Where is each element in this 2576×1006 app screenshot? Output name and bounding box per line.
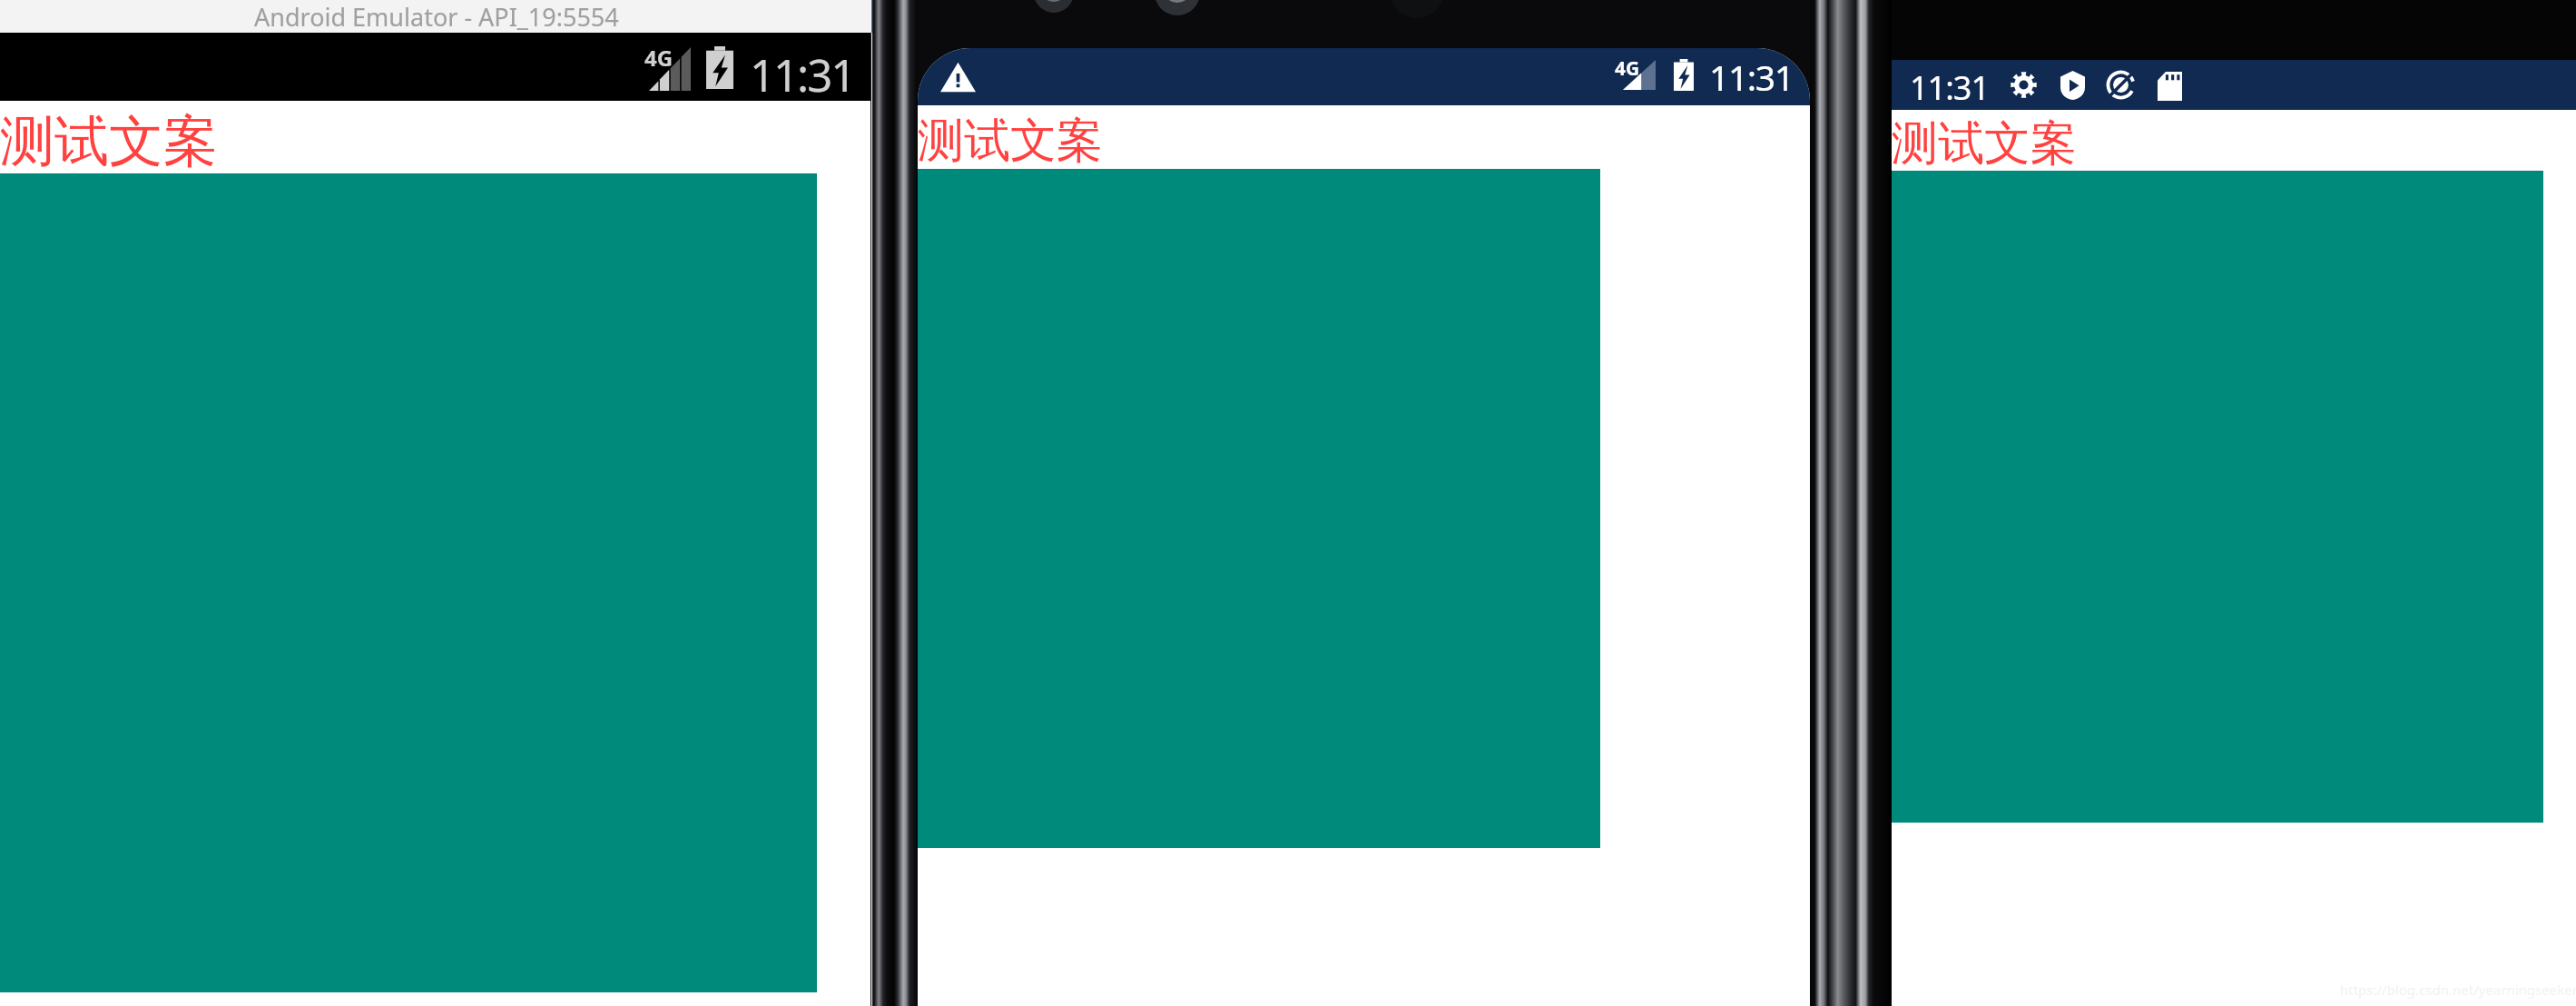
- button[interactable]: Emulator window title bar: [0, 0, 872, 33]
- staticText: 11:31: [1910, 65, 1990, 110]
- staticText: 测试文案: [918, 112, 1103, 170]
- staticText: 11:31: [750, 44, 855, 105]
- staticText: 测试文案: [1892, 114, 2077, 173]
- staticText: 4G: [644, 43, 673, 73]
- staticText: 11:31: [1709, 53, 1794, 101]
- staticText: Android Emulator - API_19:5554: [254, 0, 619, 33]
- staticText: https://blog.csdn.net/yearningseeker: [2340, 981, 2576, 999]
- button[interactable]: Status bar: [918, 48, 1810, 105]
- staticText: 4G: [1615, 55, 1640, 82]
- button[interactable]: Status bar: [1892, 60, 2576, 110]
- button[interactable]: Teal content block: [0, 173, 817, 992]
- staticText: 测试文案: [0, 107, 218, 176]
- button[interactable]: Status bar: [0, 33, 872, 101]
